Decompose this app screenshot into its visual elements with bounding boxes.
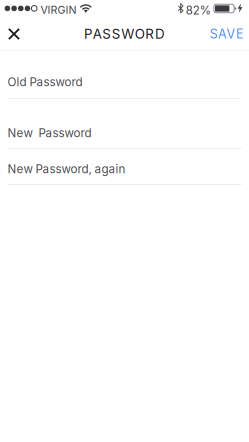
staticText: SAVE <box>210 26 244 42</box>
staticText: New Password <box>7 126 91 140</box>
staticText: Old Password <box>7 75 82 89</box>
staticText: 82% <box>186 3 211 17</box>
button[interactable]: Close <box>0 18 28 50</box>
staticText: PASSWORD <box>84 26 165 42</box>
staticText: VIRGIN <box>40 3 76 16</box>
button[interactable]: SAVE <box>203 18 249 50</box>
staticText: New Password, again <box>7 162 125 176</box>
